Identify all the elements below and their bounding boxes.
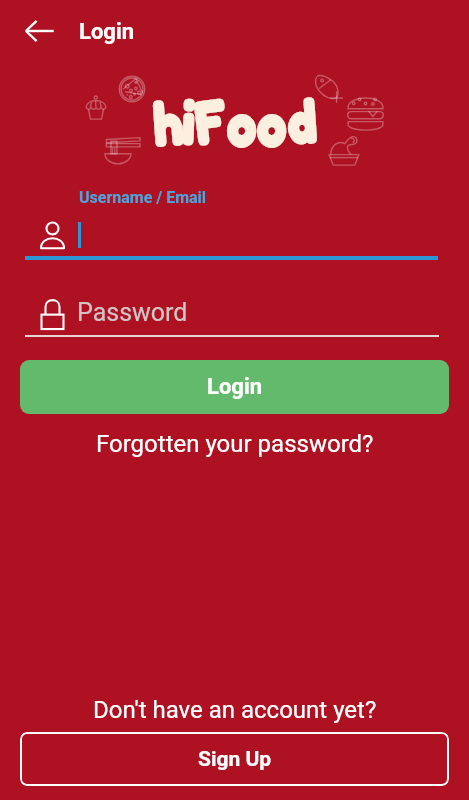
staticText: Username / Email xyxy=(79,188,207,207)
staticText: i xyxy=(181,85,197,159)
staticText: Login xyxy=(79,19,135,45)
staticText: h xyxy=(151,85,186,161)
button[interactable]: Forgotten your password? xyxy=(86,424,384,464)
staticText: d xyxy=(285,83,319,159)
button[interactable]: Login xyxy=(20,360,449,414)
staticText: Sign Up xyxy=(198,747,272,772)
staticText: o xyxy=(225,86,260,162)
button[interactable] xyxy=(25,216,469,260)
button[interactable]: Password xyxy=(25,296,469,336)
button[interactable]: Sign Up xyxy=(20,732,449,786)
staticText: F xyxy=(190,82,232,160)
staticText: Don't have an account yet? xyxy=(93,696,377,724)
button[interactable]: Back xyxy=(16,8,62,54)
staticText: Login xyxy=(207,374,263,400)
staticText: o xyxy=(255,86,289,162)
staticText: Password xyxy=(77,298,188,327)
